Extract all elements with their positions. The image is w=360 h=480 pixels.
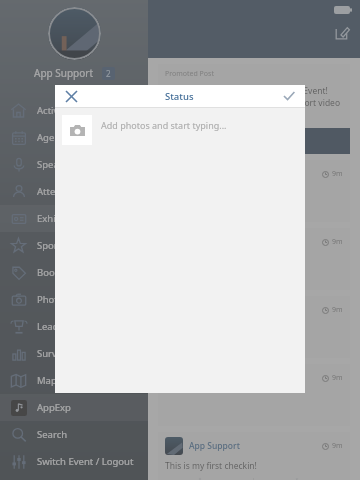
button[interactable]: Search [0,421,148,448]
staticText: Leaderboard [37,320,95,333]
button[interactable]: Speakers [0,151,148,178]
button[interactable]: Photos [0,286,148,313]
staticText: 9m [332,169,343,179]
staticText: Photos [37,293,69,306]
button[interactable]: Map [0,367,148,394]
button[interactable]: Close [55,85,87,107]
staticText: This is my first checkin! [165,460,257,472]
button[interactable]: App Support [158,296,350,358]
staticText: Status [165,90,194,103]
staticText: 2 [106,68,111,79]
button[interactable]: AppExp [0,394,148,421]
button[interactable]: Attendees [0,178,148,205]
staticText: App Support [34,66,94,80]
button[interactable]: Promoted Post [158,64,350,154]
button[interactable]: Compose post [331,21,353,43]
button[interactable]: App Support [158,160,350,222]
staticText: 9m [332,237,343,247]
button[interactable]: App Support [158,432,350,480]
staticText: Welcome to the app for this year's Event… [165,85,343,121]
staticText: Speakers [37,158,78,171]
staticText: Sponsors [37,239,79,252]
staticText: 9m [332,305,343,315]
staticText: Activity [37,104,70,117]
staticText: Search [37,428,68,441]
staticText: Promoted Post [165,69,214,79]
staticText: Exhibitors [37,212,82,225]
button[interactable]: Bookmarks [0,259,148,286]
staticText: Bookmarks [37,266,88,279]
staticText: Add photos and start typing... [101,119,227,131]
button[interactable]: Profile photo [48,7,101,60]
button[interactable]: Surveys [0,340,148,367]
staticText: 9m [332,441,343,451]
button[interactable]: Exhibitors [0,205,148,232]
staticText: Agenda [37,131,72,144]
button[interactable]: Activity [0,97,148,124]
button[interactable]: Switch Event / Logout [0,448,148,475]
staticText: Map [37,374,57,387]
staticText: App Support [189,440,240,452]
staticText: Surveys [37,347,72,360]
staticText: Attendees [37,185,83,198]
button[interactable]: Sponsors [0,232,148,259]
button[interactable]: Add photo [62,115,92,145]
button[interactable]: 2 [102,67,115,80]
button[interactable]: Agenda [0,124,148,151]
staticText: AppExp [37,401,71,414]
staticText: Switch Event / Logout [37,455,134,468]
button[interactable]: App Support [158,364,350,426]
button[interactable]: App Support [158,228,350,290]
button[interactable]: Post status [273,85,305,107]
button[interactable]: Leaderboard [0,313,148,340]
staticText: 9m [332,373,343,383]
